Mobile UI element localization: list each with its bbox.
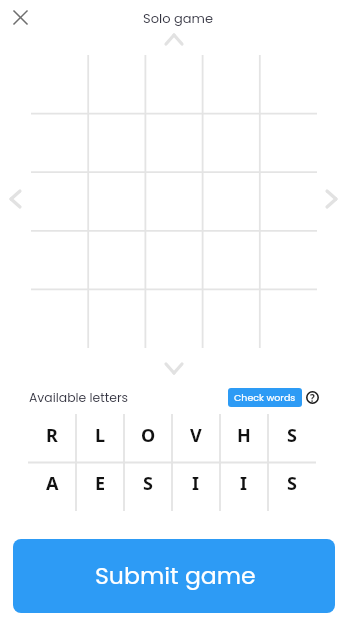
staticText: I — [192, 471, 200, 496]
staticText: Solo game — [143, 9, 213, 27]
button[interactable]: Scroll down — [159, 353, 189, 383]
staticText: I — [240, 471, 248, 496]
button[interactable]: Close — [5, 2, 35, 32]
button[interactable]: S — [268, 414, 316, 462]
staticText: S — [143, 471, 153, 496]
button[interactable]: Scroll up — [159, 24, 189, 54]
staticText: Check words — [234, 391, 296, 404]
staticText: L — [95, 423, 106, 448]
staticText: E — [95, 471, 106, 496]
staticText: R — [46, 423, 58, 448]
button[interactable]: L — [76, 414, 124, 462]
staticText: Available letters — [29, 389, 129, 406]
staticText: Submit game — [95, 559, 256, 592]
staticText: A — [46, 471, 59, 496]
button[interactable]: H — [220, 414, 268, 462]
staticText: S — [287, 471, 297, 496]
button[interactable]: Next — [316, 184, 346, 214]
button[interactable]: I — [172, 462, 220, 511]
button[interactable]: Previous — [0, 184, 30, 214]
button[interactable]: V — [172, 414, 220, 462]
button[interactable]: A — [28, 462, 76, 511]
staticText: O — [141, 423, 156, 448]
button[interactable]: S — [268, 462, 316, 511]
button[interactable]: S — [124, 462, 172, 511]
button[interactable]: Help — [306, 391, 319, 404]
staticText: ? — [310, 391, 315, 404]
staticText: V — [190, 423, 202, 448]
button[interactable]: Submit game — [13, 539, 335, 613]
staticText: S — [287, 423, 297, 448]
button[interactable]: E — [76, 462, 124, 511]
button[interactable]: O — [124, 414, 172, 462]
staticText: H — [237, 423, 251, 448]
button[interactable]: R — [28, 414, 76, 462]
button[interactable]: Check words — [228, 388, 302, 407]
button[interactable]: I — [220, 462, 268, 511]
